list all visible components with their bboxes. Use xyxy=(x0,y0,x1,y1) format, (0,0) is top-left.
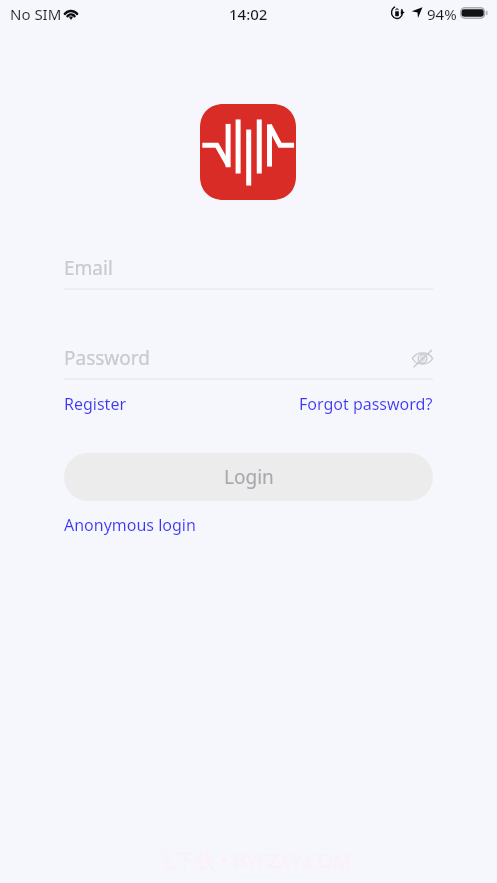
button[interactable]: Forgot password? xyxy=(299,393,433,415)
staticText: 14:02 xyxy=(229,4,268,24)
staticText: 94% xyxy=(427,4,457,24)
button[interactable]: Login xyxy=(64,453,433,501)
staticText: Login xyxy=(224,464,274,490)
button[interactable]: Register xyxy=(64,393,127,415)
staticText: No SIM xyxy=(10,4,62,24)
staticText: Email xyxy=(64,255,113,281)
button[interactable]: Anonymous login xyxy=(64,514,196,536)
staticText: Password xyxy=(64,345,150,371)
button[interactable]: Show password xyxy=(408,345,436,371)
